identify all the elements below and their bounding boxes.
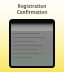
staticText: Confirmation xyxy=(0,9,64,15)
staticText: Registration xyxy=(0,3,64,9)
